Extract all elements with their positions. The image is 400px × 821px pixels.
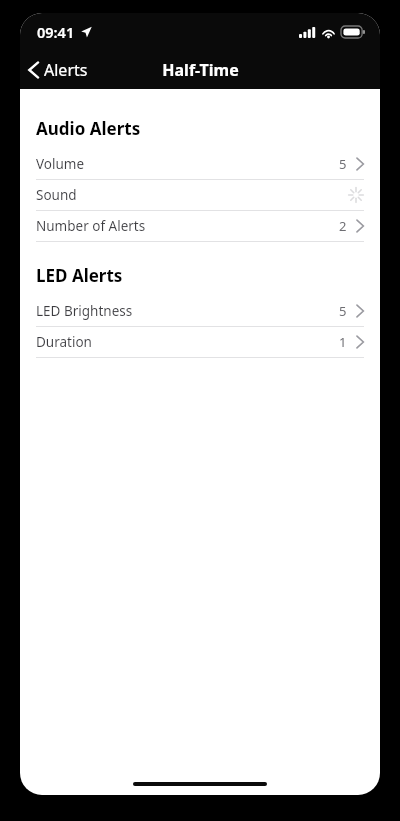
staticText: LED Alerts (36, 264, 123, 287)
staticText: 1 (339, 333, 347, 351)
staticText: Sound (36, 186, 77, 204)
staticText: Number of Alerts (36, 217, 146, 235)
other: Loading (348, 187, 364, 203)
staticText: Duration (36, 333, 92, 351)
button[interactable]: Duration (20, 327, 380, 357)
staticText: 2 (339, 217, 347, 235)
staticText: Audio Alerts (36, 117, 141, 140)
staticText: Half-Time (162, 59, 239, 81)
staticText: 5 (339, 302, 347, 320)
staticText: 5 (339, 155, 347, 173)
staticText: Alerts (44, 59, 88, 81)
staticText: 09:41 (37, 22, 75, 42)
staticText: Volume (36, 155, 85, 173)
other: Back (28, 61, 39, 79)
button[interactable]: Back (20, 55, 98, 85)
button[interactable]: Volume (20, 149, 380, 179)
button[interactable]: LED Brightness (20, 296, 380, 326)
button[interactable]: Sound (20, 180, 380, 210)
button[interactable]: Number of Alerts (20, 211, 380, 241)
staticText: LED Brightness (36, 302, 133, 320)
